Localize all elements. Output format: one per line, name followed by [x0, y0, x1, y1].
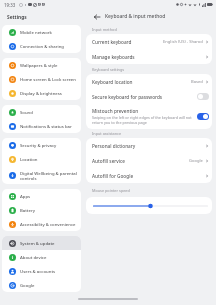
staticText: Manage keyboards: [92, 54, 135, 60]
button[interactable]: Users & accounts: [2, 264, 81, 278]
staticText: Security & privacy: [20, 142, 57, 148]
staticText: Display & brightness: [20, 90, 62, 96]
button[interactable]: Notifications & status bar: [2, 119, 81, 133]
staticText: Autofill for Google: [92, 173, 134, 179]
button[interactable]: Keyboard location: [92, 74, 209, 89]
staticText: Autofill service: [92, 158, 126, 164]
button[interactable]: About device: [2, 250, 81, 264]
staticText: Google: [20, 282, 35, 288]
button[interactable]: Mistouch prevention: [92, 104, 209, 129]
button[interactable]: Secure keyboard for passwords: [92, 89, 209, 104]
button[interactable]: Security & privacy: [2, 138, 81, 152]
staticText: Current keyboard: [92, 39, 132, 45]
staticText: Battery: [20, 207, 35, 213]
button[interactable]: Sound: [2, 105, 81, 119]
staticText: Google: [189, 158, 203, 164]
button[interactable]: Back: [92, 12, 101, 21]
button[interactable]: Personal dictionary: [92, 138, 209, 153]
staticText: System & update: [20, 240, 55, 246]
button[interactable]: Autofill service: [92, 153, 209, 168]
button[interactable]: Digital Wellbeing & parental controls: [2, 166, 81, 184]
button[interactable]: Google: [2, 278, 81, 292]
button[interactable]: System & update: [2, 236, 81, 250]
staticText: English (US) - Sharod: [163, 39, 203, 45]
button[interactable]: Current keyboard: [92, 34, 209, 49]
staticText: Accessibility & convenience: [20, 221, 76, 227]
staticText: Settings: [7, 14, 27, 21]
staticText: Input assistance: [92, 131, 122, 136]
staticText: About device: [20, 254, 47, 260]
staticText: Mistouch prevention: [92, 108, 139, 114]
button[interactable]: Manage keyboards: [92, 49, 209, 64]
staticText: Input method: [92, 27, 117, 32]
button[interactable]: Home screen & Lock screen: [2, 72, 81, 86]
staticText: Digital Wellbeing & parental controls: [20, 170, 78, 181]
staticText: Keyboard settings: [92, 67, 125, 72]
staticText: Notifications & status bar: [20, 123, 72, 129]
button[interactable]: Wallpapers & style: [2, 58, 81, 72]
button[interactable]: Mobile network: [2, 25, 81, 39]
staticText: Keyboard & input method: [105, 13, 166, 20]
button[interactable]: Connection & sharing: [2, 39, 81, 53]
staticText: Home screen & Lock screen: [20, 76, 76, 82]
button[interactable]: Battery: [2, 203, 81, 217]
staticText: Connection & sharing: [20, 43, 64, 49]
staticText: Mouse pointer speed: [92, 188, 130, 193]
button[interactable]: Autofill for Google: [92, 168, 209, 183]
staticText: 19:33: [4, 2, 16, 8]
staticText: Based: [191, 79, 203, 85]
staticText: Secure keyboard for passwords: [92, 94, 163, 100]
button[interactable]: Accessibility & convenience: [2, 217, 81, 231]
staticText: Personal dictionary: [92, 143, 136, 149]
staticText: Apps: [20, 193, 31, 199]
button[interactable]: Display & brightness: [2, 86, 81, 100]
staticText: Location: [20, 156, 38, 162]
staticText: Swiping on the left or right edges of th…: [92, 115, 194, 125]
button[interactable]: Location: [2, 152, 81, 166]
staticText: Keyboard location: [92, 79, 133, 85]
staticText: Users & accounts: [20, 268, 56, 274]
staticText: Mobile network: [20, 29, 52, 35]
button[interactable]: Apps: [2, 189, 81, 203]
staticText: Sound: [20, 109, 33, 115]
staticText: Wallpapers & style: [20, 62, 58, 68]
